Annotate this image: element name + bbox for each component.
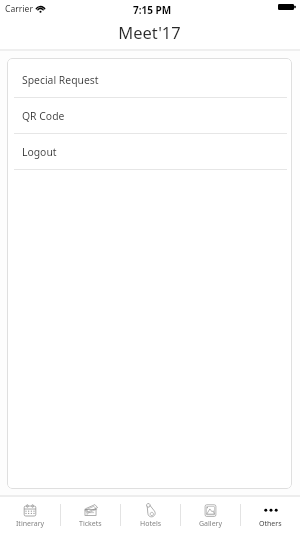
button[interactable]: Itinerary [0, 497, 60, 533]
button[interactable]: Logout [7, 134, 292, 170]
button[interactable]: Tickets [61, 497, 120, 533]
staticText: Gallery [199, 519, 223, 529]
staticText: Meet'17 [118, 21, 181, 43]
button[interactable]: Gallery [181, 497, 240, 533]
button[interactable]: QR Code [7, 98, 292, 134]
button[interactable]: Hotels [121, 497, 180, 533]
staticText: 7:15 PM [133, 3, 172, 17]
staticText: Itinerary [16, 519, 45, 529]
staticText: Logout [22, 145, 57, 159]
staticText: Others [259, 519, 282, 529]
button[interactable]: Special Request [7, 62, 292, 98]
staticText: Tickets [79, 519, 102, 529]
button[interactable]: Others [241, 497, 300, 533]
staticText: Hotels [140, 519, 162, 529]
staticText: Carrier [5, 3, 33, 15]
staticText: QR Code [22, 109, 65, 123]
staticText: Special Request [22, 73, 99, 87]
